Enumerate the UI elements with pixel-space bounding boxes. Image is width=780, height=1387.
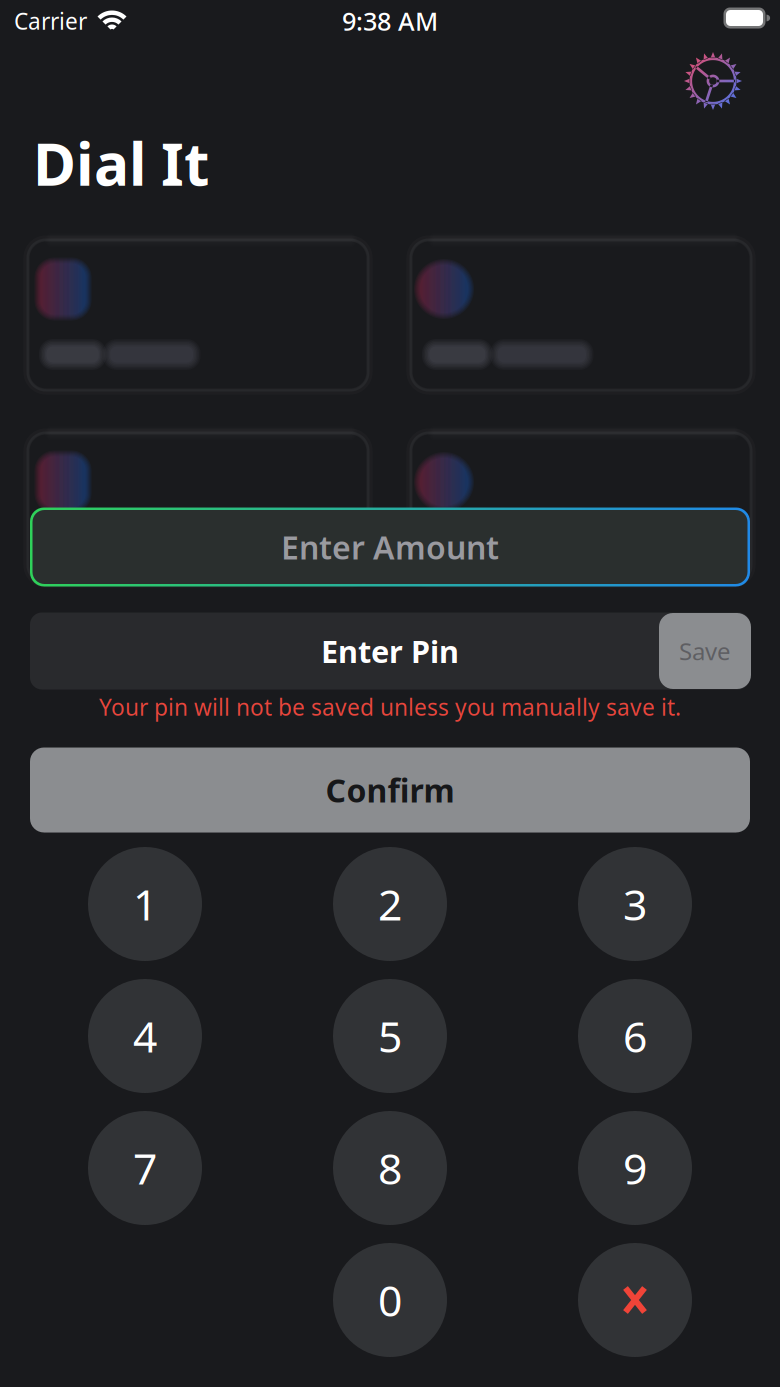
staticText: Dial It xyxy=(33,124,209,202)
button[interactable]: Save xyxy=(659,613,751,689)
button[interactable]: 9 xyxy=(578,1111,692,1225)
staticText: 9:38 AM xyxy=(342,4,438,38)
button[interactable] xyxy=(578,1243,692,1357)
staticText: Save xyxy=(679,635,731,667)
button[interactable]: 2 xyxy=(333,847,447,961)
button[interactable]: 5 xyxy=(333,979,447,1093)
staticText: 7 xyxy=(133,1140,157,1196)
staticText: 4 xyxy=(133,1008,157,1064)
staticText: 8 xyxy=(378,1140,402,1196)
staticText: 3 xyxy=(623,876,647,932)
staticText: 1 xyxy=(133,876,157,932)
staticText: 9 xyxy=(623,1140,647,1196)
staticText: 2 xyxy=(378,876,402,932)
button[interactable]: 6 xyxy=(578,979,692,1093)
staticText: Carrier xyxy=(14,6,87,36)
staticText: Your pin will not be saved unless you ma… xyxy=(99,692,681,722)
staticText: Confirm xyxy=(325,769,454,811)
staticText: Enter Amount xyxy=(281,526,499,568)
staticText: 0 xyxy=(378,1272,402,1328)
button[interactable]: 3 xyxy=(578,847,692,961)
button[interactable]: 8 xyxy=(333,1111,447,1225)
button[interactable]: Confirm xyxy=(30,747,750,832)
staticText: 5 xyxy=(378,1008,402,1064)
button[interactable]: 7 xyxy=(88,1111,202,1225)
staticText: 6 xyxy=(623,1008,647,1064)
button[interactable]: 4 xyxy=(88,979,202,1093)
button[interactable]: Settings xyxy=(675,43,751,119)
button[interactable]: 0 xyxy=(333,1243,447,1357)
staticText: Enter Pin xyxy=(321,631,459,671)
button[interactable]: 1 xyxy=(88,847,202,961)
